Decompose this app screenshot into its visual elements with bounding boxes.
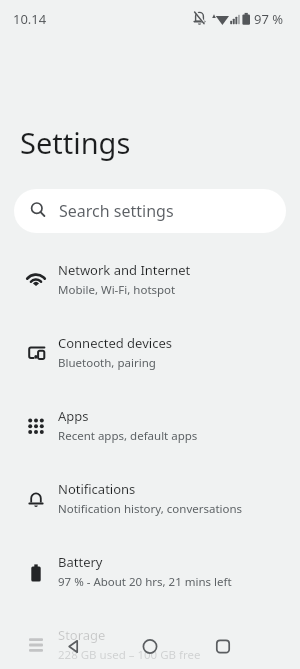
staticText: 228 GB used – 100 GB free xyxy=(58,647,201,663)
staticText: Mobile, Wi-Fi, hotspot xyxy=(58,282,176,298)
staticText: 97 % xyxy=(254,10,284,28)
staticText: 97 % - About 20 hrs, 21 mins left xyxy=(58,574,232,590)
staticText: 10.14 xyxy=(13,10,47,28)
staticText: Network and Internet xyxy=(58,261,191,279)
staticText: Settings xyxy=(20,123,131,162)
staticText: Recent apps, default apps xyxy=(58,428,198,444)
staticText: Connected devices xyxy=(58,334,172,352)
button[interactable] xyxy=(126,627,174,669)
button[interactable]: Notifications xyxy=(0,462,300,535)
staticText: Storage xyxy=(58,626,106,644)
button[interactable]: Search settings xyxy=(14,189,286,233)
button[interactable] xyxy=(199,627,247,669)
staticText: Notification history, conversations xyxy=(58,501,243,517)
staticText: Search settings xyxy=(59,200,174,222)
button[interactable] xyxy=(50,627,98,669)
button[interactable]: Battery xyxy=(0,535,300,608)
button[interactable]: Network and Internet xyxy=(0,243,300,316)
staticText: Notifications xyxy=(58,480,136,498)
button[interactable]: Connected devices xyxy=(0,316,300,389)
staticText: Battery xyxy=(58,553,103,571)
staticText: Bluetooth, pairing xyxy=(58,355,156,371)
staticText: Apps xyxy=(58,407,89,425)
button[interactable]: Storage xyxy=(0,608,300,669)
button[interactable]: Apps xyxy=(0,389,300,462)
